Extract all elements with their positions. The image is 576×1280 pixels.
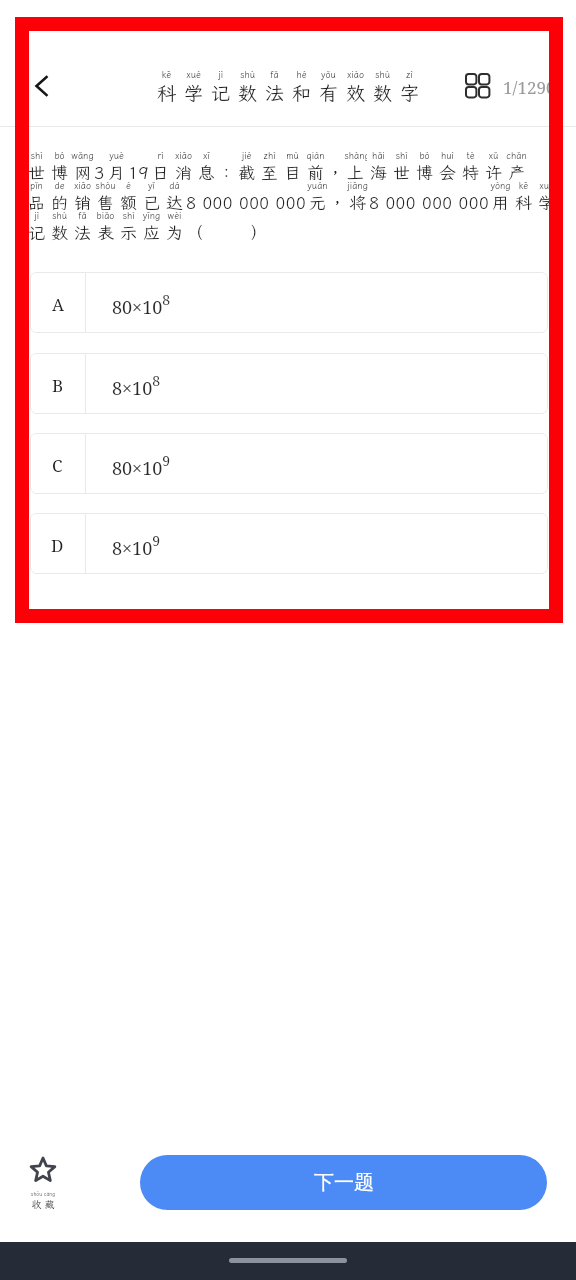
staticText: 字 (396, 80, 423, 105)
staticText: 法 (71, 221, 94, 243)
button[interactable]: C (30, 433, 548, 494)
staticText: bó (48, 150, 71, 161)
staticText: huì (436, 150, 459, 161)
staticText: 海 (367, 161, 390, 183)
staticText: 博 (413, 161, 436, 183)
staticText: 博 (48, 161, 71, 183)
staticText: cáng (43, 1191, 56, 1198)
staticText: yǒu (315, 69, 342, 80)
staticText: 8×108 (112, 371, 161, 401)
staticText: B (52, 374, 64, 397)
staticText: 售 (94, 191, 117, 213)
staticText: dá (163, 180, 186, 191)
staticText: 将 (346, 191, 369, 213)
staticText: shàng (344, 150, 367, 161)
staticText: xiào (342, 69, 369, 80)
staticText: xǔ (482, 150, 505, 161)
staticText: 世 (390, 161, 413, 183)
staticText: 19 (128, 161, 149, 183)
staticText: mù (281, 150, 304, 161)
staticText: 额 (117, 191, 140, 213)
staticText: 科 (153, 80, 180, 105)
staticText: 记 (25, 221, 48, 243)
staticText: shù (234, 69, 261, 80)
staticText: 藏 (43, 1198, 56, 1211)
staticText: yǐ (140, 180, 163, 191)
staticText: 3 (94, 161, 105, 183)
staticText: de (48, 180, 71, 191)
staticText: shù (48, 210, 71, 221)
staticText: 销 (71, 191, 94, 213)
staticText: 网 (71, 161, 94, 183)
staticText: biǎo (94, 210, 117, 221)
staticText: tè (459, 150, 482, 161)
staticText: 上 (344, 161, 367, 183)
staticText: 记 (207, 80, 234, 105)
staticText: 用 (489, 191, 512, 213)
staticText: D (51, 534, 64, 557)
staticText: hǎi (367, 150, 390, 161)
staticText: 月 (105, 161, 128, 183)
staticText: xiāo (172, 150, 195, 161)
staticText: yuán (306, 180, 329, 191)
staticText: 下一题 (314, 1170, 374, 1195)
staticText: 会 (436, 161, 459, 183)
staticText: rì (149, 150, 172, 161)
staticText: ， (327, 161, 344, 183)
button[interactable]: D (30, 513, 548, 574)
staticText: 消 (172, 161, 195, 183)
staticText: 日 (149, 161, 172, 183)
staticText: jì (25, 210, 48, 221)
staticText: 数 (369, 80, 396, 105)
staticText: 法 (261, 80, 288, 105)
staticText: 数 (234, 80, 261, 105)
staticText: 表 (94, 221, 117, 243)
staticText: xī (195, 150, 218, 161)
staticText: xué (535, 180, 558, 191)
button[interactable]: Back (20, 64, 64, 108)
staticText: 8 000 000 000 (369, 191, 489, 213)
staticText: 为 (163, 221, 186, 243)
staticText: 已 (140, 191, 163, 213)
staticText: zhì (258, 150, 281, 161)
staticText: xiāo (71, 180, 94, 191)
staticText: chǎn (505, 150, 528, 161)
staticText: 的 (48, 191, 71, 213)
staticText: shì (25, 150, 48, 161)
staticText: bó (413, 150, 436, 161)
button[interactable]: Favourite (18, 1157, 68, 1211)
staticText: C (52, 454, 63, 477)
staticText: jì (207, 69, 234, 80)
staticText: 和 (288, 80, 315, 105)
staticText: ， (329, 191, 346, 213)
button[interactable]: 下一题 (140, 1155, 547, 1210)
staticText: yuè (105, 150, 128, 161)
staticText: 品 (25, 191, 48, 213)
staticText: pǐn (25, 180, 48, 191)
staticText: qián (304, 150, 327, 161)
staticText: fǎ (261, 69, 288, 80)
button[interactable]: B (30, 353, 548, 414)
staticText: 80×109 (112, 451, 171, 481)
staticText: 学 (180, 80, 207, 105)
staticText: 目 (281, 161, 304, 183)
staticText: 1/1290 (503, 76, 556, 99)
staticText: A (52, 293, 64, 316)
button[interactable]: Question list (455, 63, 499, 107)
staticText: 息 (195, 161, 218, 183)
staticText: 80×108 (112, 290, 171, 320)
staticText: 有 (315, 80, 342, 105)
button[interactable]: A (30, 272, 548, 333)
staticText: 示 (117, 221, 140, 243)
staticText: é (117, 180, 140, 191)
staticText: 截 (235, 161, 258, 183)
staticText: 收 (30, 1198, 43, 1211)
staticText: jié (235, 150, 258, 161)
staticText: yòng (489, 180, 512, 191)
staticText: wèi (163, 210, 186, 221)
staticText: xué (180, 69, 207, 80)
staticText: 特 (459, 161, 482, 183)
staticText: shòu (94, 180, 117, 191)
staticText: （ ） (186, 221, 268, 243)
staticText: 科 (512, 191, 535, 213)
